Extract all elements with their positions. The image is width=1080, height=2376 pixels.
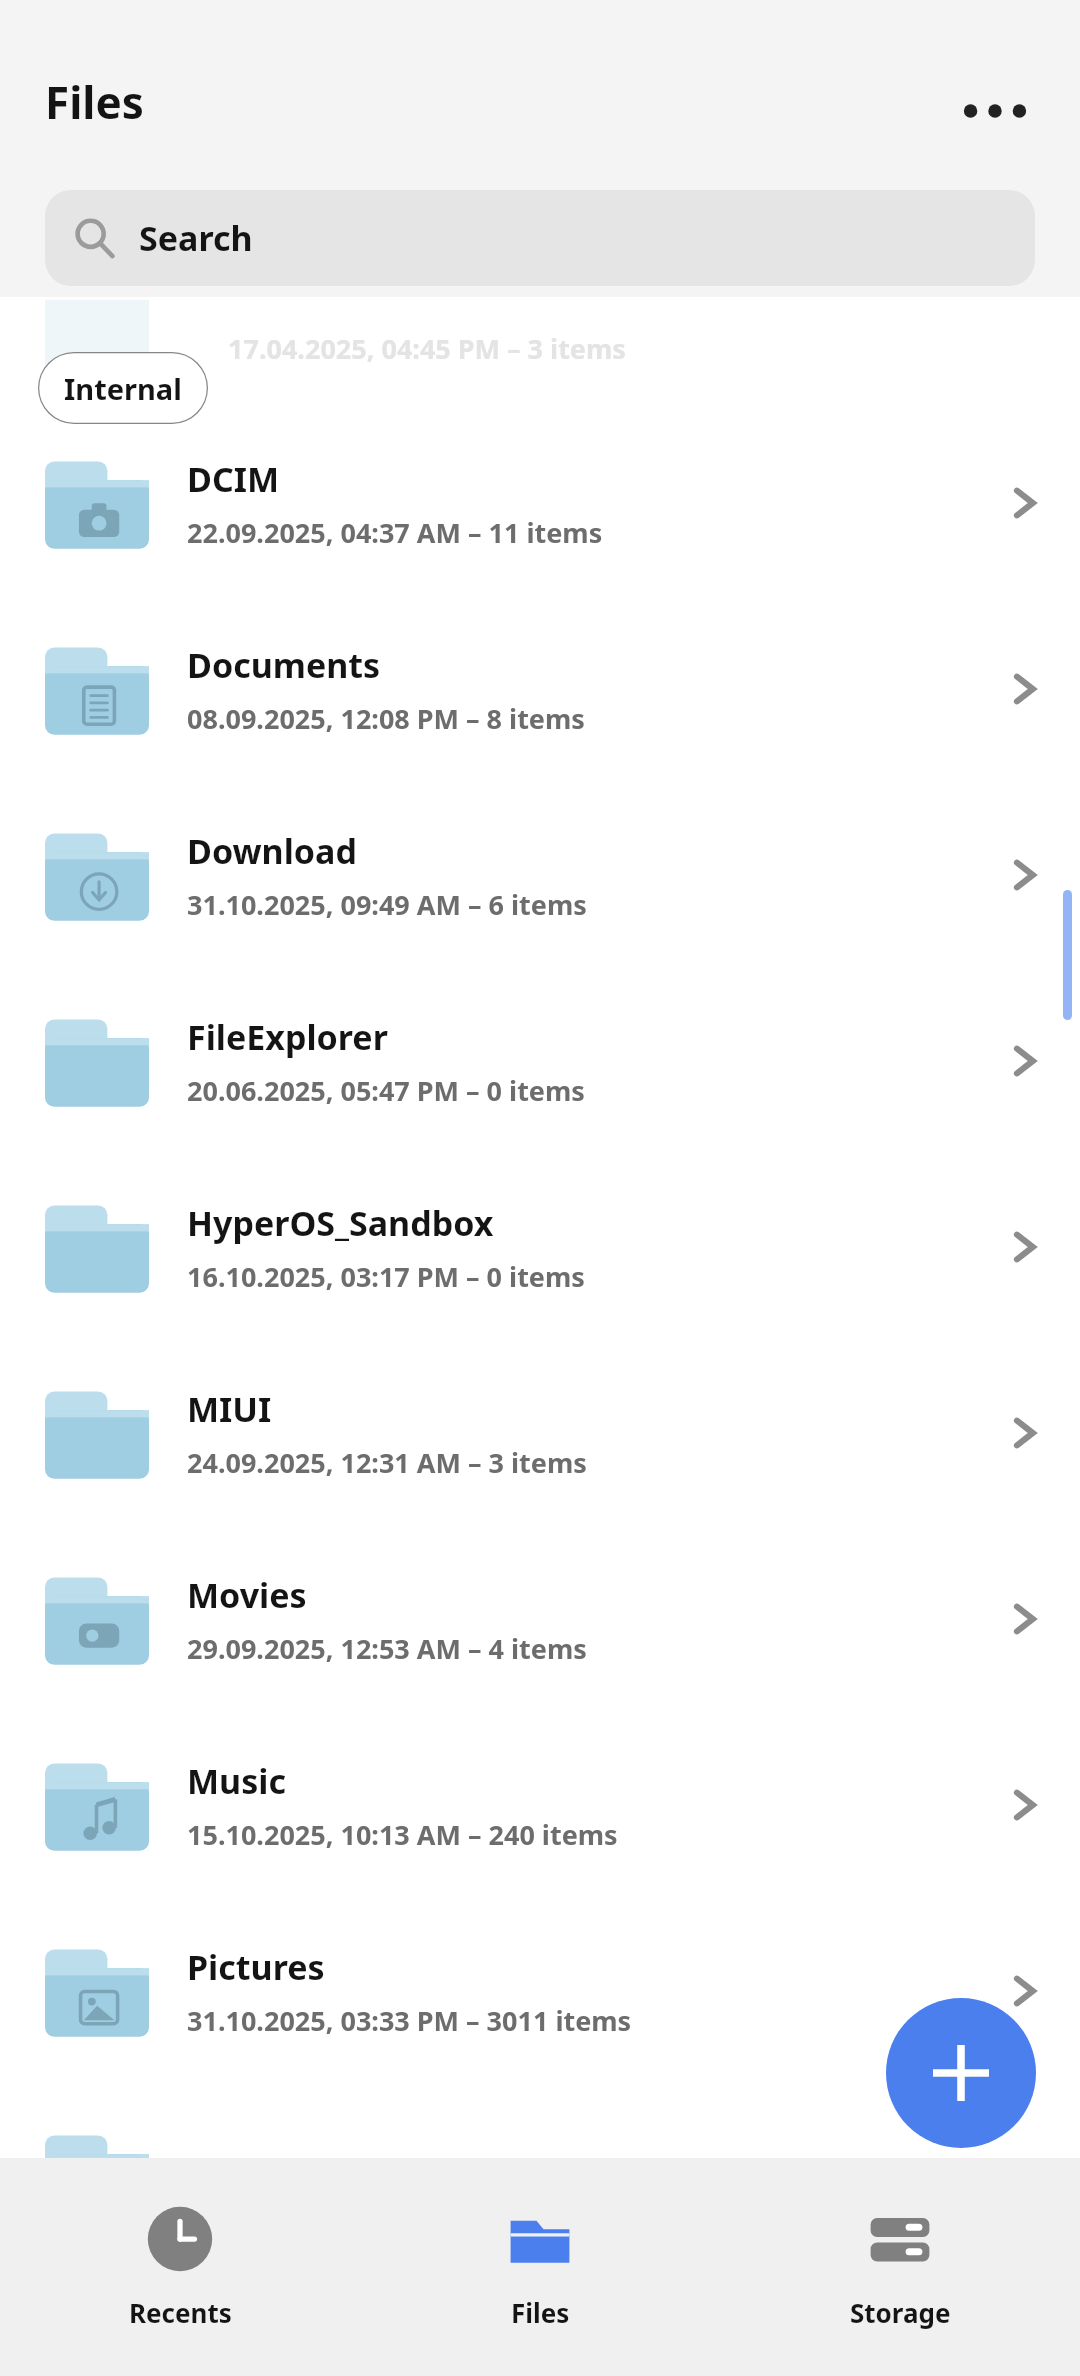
button[interactable]: Pictures [0,1898,1080,2084]
button[interactable]: Internal [38,352,208,424]
button[interactable]: Ringtones [0,2084,1080,2270]
staticText: DCIM [187,456,280,502]
staticText: Music [187,1758,286,1804]
staticText: Files [511,2295,570,2330]
staticText: Download [187,828,357,874]
button[interactable]: Files [360,2158,720,2376]
button[interactable]: More options [950,66,1040,156]
button[interactable]: Music [0,1712,1080,1898]
button[interactable]: Add [886,1998,1036,2148]
button[interactable]: Documents [0,596,1080,782]
button[interactable]: MIUI [0,1340,1080,1526]
staticText: 24.09.2025, 12:31 AM – 3 items [187,1444,587,1481]
staticText: 16.10.2025, 03:17 PM – 0 items [187,1258,585,1295]
staticText: 17.04.2025, 04:45 PM – 3 items [228,330,626,367]
staticText: Internal [64,369,182,408]
staticText: 31.10.2025, 03:33 PM – 3011 items [187,2002,632,2039]
button[interactable]: Movies [0,1526,1080,1712]
staticText: Documents [187,642,381,688]
button[interactable]: FileExplorer [0,968,1080,1154]
staticText: FileExplorer [187,1014,388,1060]
staticText: Movies [187,1572,307,1618]
staticText: 15.10.2025, 10:13 AM – 240 items [187,1816,618,1853]
staticText: Ringtones [187,2154,359,2200]
button[interactable]: HyperOS_Sandbox [0,1154,1080,1340]
staticText: Files [45,72,144,132]
staticText: 08.09.2025, 12:08 PM – 8 items [187,700,585,737]
button[interactable]: Search [45,190,1035,286]
staticText: MIUI [187,1386,272,1432]
staticText: Recents [129,2295,232,2330]
button[interactable]: Recents [0,2158,360,2376]
button[interactable]: Download [0,782,1080,968]
staticText: 29.09.2025, 12:53 AM – 4 items [187,1630,587,1667]
button[interactable]: DCIM [0,410,1080,596]
staticText: 20.06.2025, 05:47 PM – 0 items [187,1072,585,1109]
staticText: 22.09.2025, 04:37 AM – 11 items [187,514,603,551]
staticText: Search [139,215,253,261]
button[interactable]: Storage [720,2158,1080,2376]
staticText: HyperOS_Sandbox [187,1200,494,1246]
staticText: 31.10.2025, 09:49 AM – 6 items [187,886,587,923]
staticText: Storage [850,2295,951,2330]
staticText: Pictures [187,1944,325,1990]
